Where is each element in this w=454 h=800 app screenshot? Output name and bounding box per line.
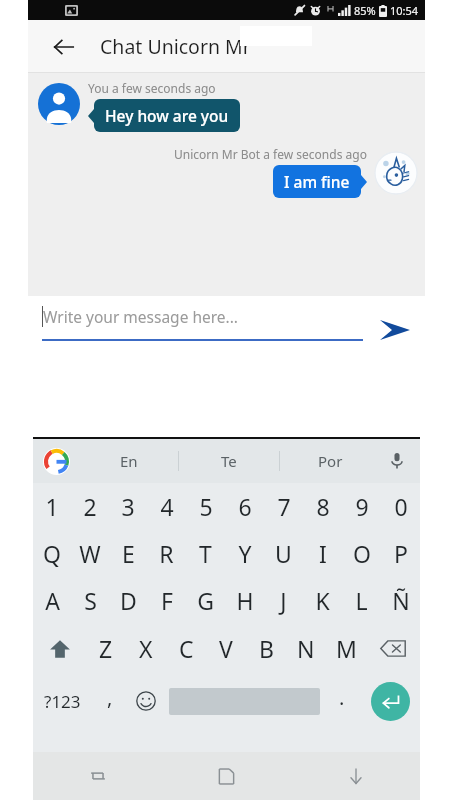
staticText: 3: [121, 491, 135, 522]
button[interactable]: 5: [186, 483, 225, 530]
staticText: Hey how are you: [105, 105, 229, 126]
button[interactable]: 9: [342, 483, 381, 530]
button[interactable]: Ñ: [381, 577, 420, 624]
button[interactable]: I am fine: [273, 165, 361, 198]
staticText: T: [199, 538, 212, 569]
button[interactable]: ,: [92, 673, 127, 729]
button[interactable]: Hide keyboard: [291, 752, 420, 800]
button[interactable]: Te: [179, 439, 279, 483]
button[interactable]: Hey how are you: [94, 99, 240, 132]
staticText: H: [236, 585, 254, 616]
button[interactable]: K: [303, 577, 342, 624]
button[interactable]: Q: [33, 530, 71, 577]
staticText: Te: [221, 451, 237, 471]
button[interactable]: F: [147, 577, 186, 624]
staticText: 9: [355, 491, 369, 522]
button[interactable]: N: [286, 624, 326, 673]
staticText: ,: [107, 684, 113, 711]
staticText: I am fine: [284, 171, 350, 192]
button[interactable]: 2: [71, 483, 109, 530]
staticText: Ñ: [392, 585, 410, 616]
button[interactable]: M: [326, 624, 366, 673]
button[interactable]: Backspace: [366, 624, 420, 673]
staticText: A: [45, 585, 60, 616]
button[interactable]: V: [206, 624, 246, 673]
button[interactable]: Shift: [33, 624, 86, 673]
button[interactable]: J: [264, 577, 303, 624]
staticText: S: [84, 585, 97, 616]
button[interactable]: ?123: [33, 673, 92, 729]
staticText: Unicorn Mr Bot a few seconds ago: [174, 146, 367, 162]
button[interactable]: En: [79, 439, 178, 483]
button[interactable]: Z: [86, 624, 126, 673]
button[interactable]: Recents: [33, 752, 162, 800]
button[interactable]: X: [126, 624, 166, 673]
button[interactable]: 3: [109, 483, 147, 530]
button[interactable]: U: [264, 530, 303, 577]
button[interactable]: W: [71, 530, 109, 577]
button[interactable]: L: [342, 577, 381, 624]
staticText: D: [120, 585, 137, 616]
button[interactable]: Y: [225, 530, 264, 577]
staticText: W: [79, 538, 101, 569]
button[interactable]: 8: [303, 483, 342, 530]
button[interactable]: 4: [147, 483, 186, 530]
button[interactable]: Home: [162, 752, 291, 800]
staticText: Chat Unicorn Mr: [100, 33, 251, 60]
staticText: Write your message here...: [43, 306, 239, 327]
button[interactable]: I: [303, 530, 342, 577]
button[interactable]: D: [109, 577, 147, 624]
button[interactable]: S: [71, 577, 109, 624]
button[interactable]: T: [186, 530, 225, 577]
button[interactable]: P: [381, 530, 420, 577]
button[interactable]: B: [246, 624, 286, 673]
button[interactable]: 7: [264, 483, 303, 530]
button[interactable]: .: [324, 673, 360, 729]
staticText: O: [353, 538, 371, 569]
staticText: .: [339, 684, 345, 711]
button[interactable]: A: [33, 577, 71, 624]
button[interactable]: Emoji: [127, 673, 165, 729]
staticText: I: [319, 538, 327, 569]
staticText: 6: [238, 491, 252, 522]
button[interactable]: Por: [280, 439, 380, 483]
button[interactable]: Space: [165, 673, 324, 729]
button[interactable]: Send: [373, 308, 417, 352]
staticText: P: [394, 538, 408, 569]
button[interactable]: 1: [33, 483, 71, 530]
staticText: L: [355, 585, 368, 616]
button[interactable]: C: [166, 624, 206, 673]
button[interactable]: Enter: [360, 673, 420, 729]
button[interactable]: R: [147, 530, 186, 577]
staticText: 7: [277, 491, 291, 522]
staticText: Por: [318, 451, 343, 471]
staticText: G: [197, 585, 214, 616]
staticText: Z: [99, 633, 113, 664]
staticText: 8: [316, 491, 330, 522]
staticText: 1: [45, 491, 59, 522]
button[interactable]: 0: [381, 483, 420, 530]
button[interactable]: O: [342, 530, 381, 577]
button[interactable]: Voice input: [382, 446, 412, 476]
button[interactable]: Google: [41, 446, 71, 476]
staticText: B: [259, 633, 274, 664]
staticText: ?123: [44, 690, 81, 713]
staticText: 85%: [354, 3, 376, 18]
staticText: K: [315, 585, 330, 616]
button[interactable]: Write your message here...: [42, 306, 363, 341]
staticText: V: [219, 633, 233, 664]
staticText: En: [120, 451, 138, 471]
button[interactable]: 6: [225, 483, 264, 530]
staticText: 10:54: [390, 3, 419, 18]
staticText: 0: [394, 491, 408, 522]
button[interactable]: Back: [44, 27, 84, 67]
button[interactable]: H: [225, 577, 264, 624]
staticText: M: [336, 633, 357, 664]
staticText: 5: [199, 491, 213, 522]
staticText: Y: [238, 538, 252, 569]
staticText: R: [159, 538, 174, 569]
button[interactable]: E: [109, 530, 147, 577]
button[interactable]: G: [186, 577, 225, 624]
staticText: X: [139, 633, 153, 664]
staticText: Q: [43, 538, 61, 569]
